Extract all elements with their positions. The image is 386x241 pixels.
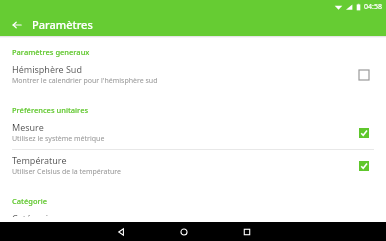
staticText: Catégories [12,212,58,217]
button[interactable]: Recent apps [236,222,258,241]
staticText: Température [12,154,67,166]
staticText: Paramètres [32,17,93,32]
button[interactable]: Back [110,222,132,241]
button[interactable]: Back [8,16,25,33]
staticText: Utilisez le système métrique [12,134,105,144]
staticText: Catégorie [12,196,47,206]
button[interactable]: Hémisphère Sud [0,59,386,91]
button[interactable]: Mesure [0,117,386,149]
button[interactable]: Home [173,222,195,241]
button[interactable]: Température [0,150,386,182]
staticText: Paramètres generaux [12,47,90,57]
staticText: Hémisphère Sud [12,63,82,75]
staticText: Montrer le calendrier pour l'hémisphère … [12,76,158,86]
staticText: Préférences unitaires [12,105,89,115]
staticText: Utiliser Celsius de la température [12,167,122,177]
staticText: Mesure [12,121,44,133]
button[interactable]: Catégories [0,208,386,222]
staticText: 04:58 [364,2,382,12]
